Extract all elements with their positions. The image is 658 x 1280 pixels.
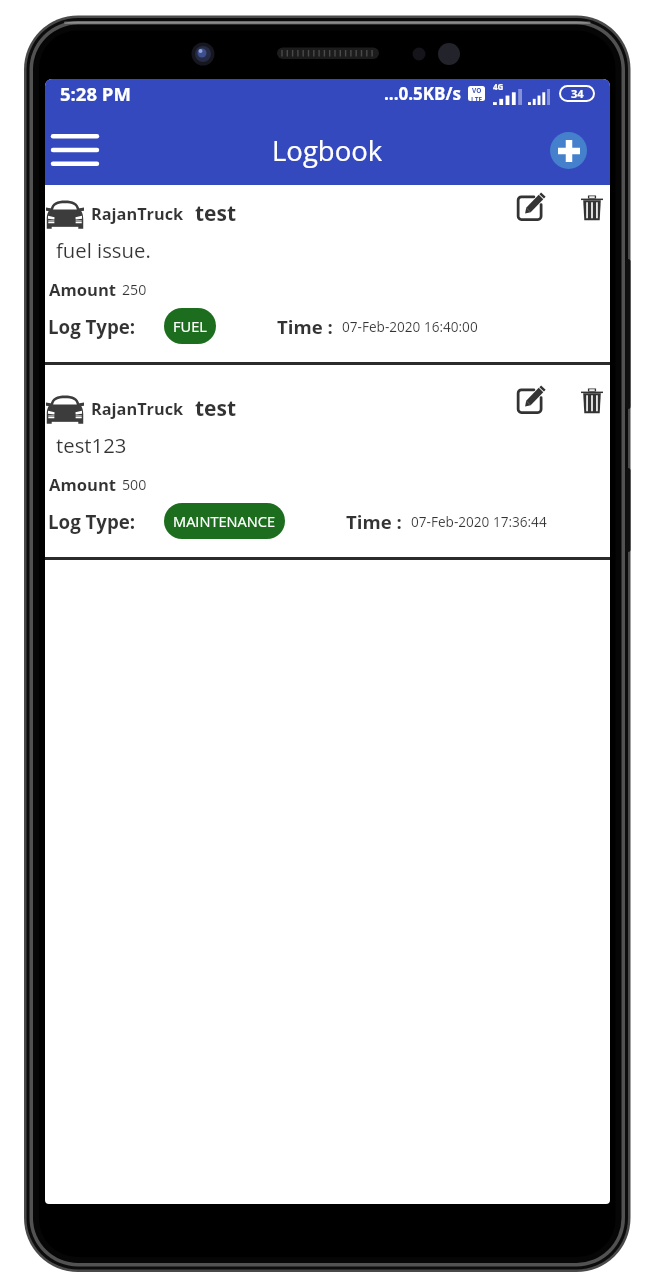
staticText: 34 xyxy=(571,86,584,101)
button[interactable]: Delete xyxy=(577,385,607,415)
staticText: FUEL xyxy=(173,316,207,336)
staticText: 07-Feb-2020 16:40:00 xyxy=(342,317,478,336)
staticText: Amount xyxy=(49,278,117,301)
staticText: test xyxy=(195,199,237,228)
staticText: ...0.5KB/s xyxy=(384,82,462,105)
staticText: Log Type: xyxy=(48,509,136,534)
button[interactable]: Edit xyxy=(513,383,547,417)
button[interactable]: Edit xyxy=(513,190,547,224)
button[interactable]: RajanTruck xyxy=(45,185,610,365)
staticText: 07-Feb-2020 17:36:44 xyxy=(411,512,547,531)
staticText: LTE xyxy=(471,95,483,101)
staticText: RajanTruck xyxy=(91,398,184,420)
staticText: MAINTENANCE xyxy=(173,511,276,531)
staticText: 250 xyxy=(122,280,147,299)
button[interactable]: Add log entry xyxy=(550,132,587,169)
staticText: RajanTruck xyxy=(91,203,184,225)
staticText: Logbook xyxy=(272,132,383,169)
staticText: Time : xyxy=(277,314,333,339)
staticText: Log Type: xyxy=(48,314,136,339)
staticText: test xyxy=(195,394,237,423)
staticText: VO xyxy=(472,86,482,95)
staticText: Amount xyxy=(49,473,117,496)
staticText: test123 xyxy=(56,431,127,459)
staticText: fuel issue. xyxy=(56,236,151,264)
staticText: 500 xyxy=(122,475,147,494)
button[interactable]: RajanTruck xyxy=(45,365,610,560)
staticText: 4G xyxy=(493,81,504,92)
staticText: 5:28 PM xyxy=(60,81,131,106)
button[interactable]: Open navigation menu xyxy=(48,123,102,177)
button[interactable]: Delete xyxy=(577,192,607,222)
staticText: Time : xyxy=(346,509,402,534)
